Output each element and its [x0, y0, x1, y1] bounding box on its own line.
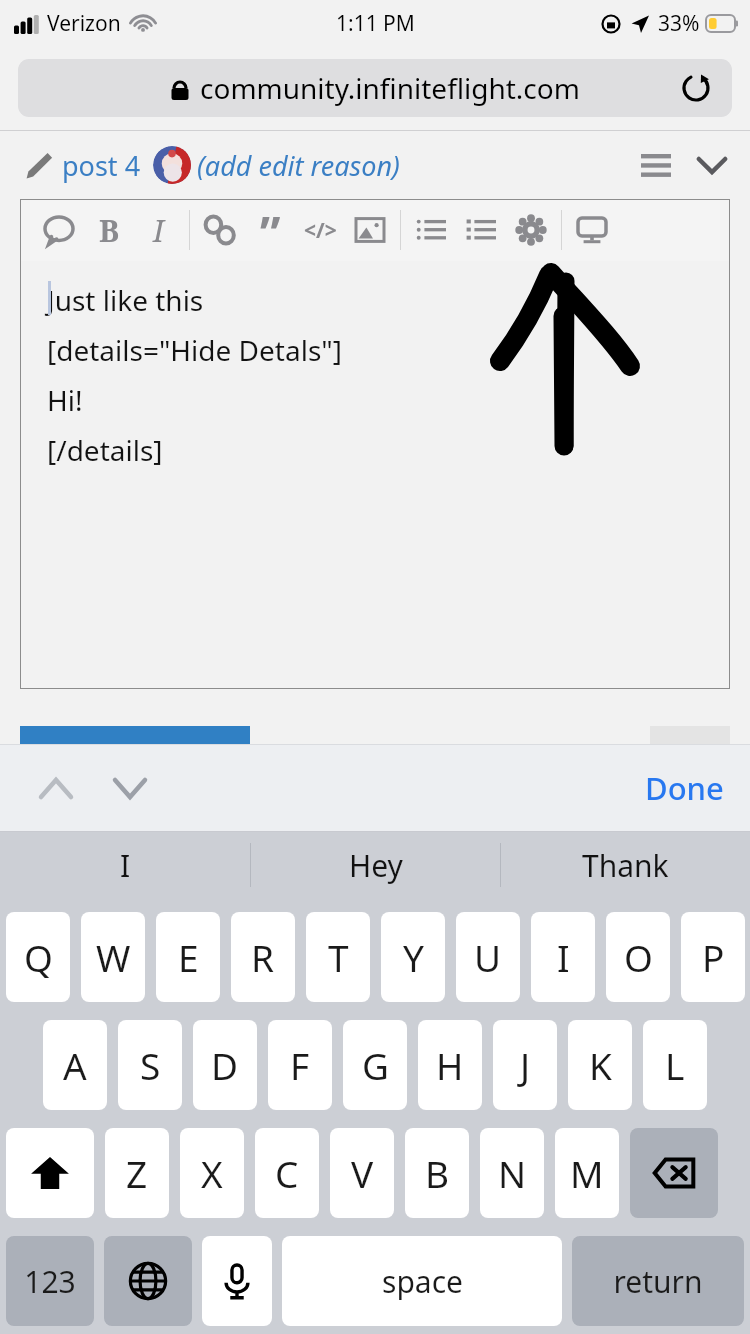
- button[interactable]: [153, 146, 191, 184]
- button[interactable]: Collapse: [688, 141, 736, 189]
- staticText: Hi!: [47, 381, 83, 419]
- staticText: B: [99, 210, 120, 251]
- button[interactable]: (add edit reason): [197, 147, 400, 184]
- staticText: 123: [24, 1261, 76, 1302]
- staticText: Hey: [349, 845, 403, 886]
- button[interactable]: community.infiniteflight.com: [18, 59, 732, 117]
- button[interactable]: Done: [645, 767, 724, 809]
- button[interactable]: Settings: [506, 201, 556, 259]
- staticText: Y: [403, 932, 424, 982]
- button[interactable]: Blockquote: [245, 201, 295, 259]
- staticText: S: [140, 1040, 161, 1090]
- button[interactable]: space: [282, 1236, 562, 1326]
- staticText: Thank: [582, 845, 669, 886]
- staticText: [/details]: [47, 431, 163, 469]
- staticText: P: [702, 932, 725, 982]
- button[interactable]: Q: [6, 912, 70, 1002]
- button[interactable]: B: [405, 1128, 469, 1218]
- staticText: D: [211, 1040, 239, 1090]
- button[interactable]: Shift: [6, 1128, 94, 1218]
- button[interactable]: post 4: [62, 147, 141, 184]
- staticText: space: [382, 1261, 463, 1302]
- button[interactable]: Link: [195, 201, 245, 259]
- button[interactable]: X: [180, 1128, 244, 1218]
- staticText: F: [290, 1040, 310, 1090]
- button[interactable]: V: [330, 1128, 394, 1218]
- button[interactable]: Hey: [251, 832, 500, 898]
- button[interactable]: S: [118, 1020, 182, 1110]
- button[interactable]: I: [531, 912, 595, 1002]
- button[interactable]: Reload: [674, 66, 718, 110]
- button[interactable]: E: [156, 912, 220, 1002]
- button[interactable]: D: [193, 1020, 257, 1110]
- button[interactable]: T: [306, 912, 370, 1002]
- button[interactable]: return: [572, 1236, 744, 1326]
- staticText: </>: [304, 216, 337, 245]
- staticText: T: [328, 932, 349, 982]
- button[interactable]: Next field: [102, 760, 158, 816]
- button[interactable]: Y: [381, 912, 445, 1002]
- staticText: I: [153, 210, 165, 251]
- button[interactable]: 123: [6, 1236, 94, 1326]
- staticText: W: [96, 932, 131, 982]
- button[interactable]: M: [555, 1128, 619, 1218]
- staticText: R: [251, 932, 275, 982]
- staticText: X: [201, 1148, 223, 1198]
- staticText: E: [178, 932, 199, 982]
- button[interactable]: U: [456, 912, 520, 1002]
- button[interactable]: Menu: [632, 141, 680, 189]
- button[interactable]: A: [43, 1020, 107, 1110]
- button[interactable]: Italic: [134, 201, 184, 259]
- staticText: L: [665, 1040, 685, 1090]
- button[interactable]: O: [606, 912, 670, 1002]
- button[interactable]: Quote reply: [34, 201, 84, 259]
- button[interactable]: Bold: [84, 201, 134, 259]
- button[interactable]: Thank: [501, 832, 750, 898]
- button[interactable]: W: [81, 912, 145, 1002]
- button[interactable]: J: [493, 1020, 557, 1110]
- button[interactable]: Code: [295, 201, 345, 259]
- staticText: O: [624, 932, 653, 982]
- staticText: K: [589, 1040, 612, 1090]
- staticText: community.infiniteflight.com: [200, 69, 580, 107]
- button[interactable]: N: [480, 1128, 544, 1218]
- staticText: return: [613, 1261, 703, 1302]
- staticText: Done: [645, 767, 724, 809]
- staticText: I: [120, 845, 131, 886]
- button[interactable]: C: [255, 1128, 319, 1218]
- staticText: B: [425, 1148, 450, 1198]
- staticText: 1:11 PM: [336, 9, 415, 38]
- button[interactable]: G: [343, 1020, 407, 1110]
- button[interactable]: Preview: [567, 201, 617, 259]
- button[interactable]: K: [568, 1020, 632, 1110]
- button[interactable]: Previous field: [28, 760, 84, 816]
- staticText: Z: [126, 1148, 148, 1198]
- button[interactable]: Bulleted list: [406, 201, 456, 259]
- button[interactable]: L: [643, 1020, 707, 1110]
- staticText: H: [436, 1040, 464, 1090]
- staticText: V: [351, 1148, 374, 1198]
- button[interactable]: Switch keyboard: [104, 1236, 192, 1326]
- button[interactable]: Dictation: [202, 1236, 272, 1326]
- button[interactable]: F: [268, 1020, 332, 1110]
- staticText: A: [63, 1040, 87, 1090]
- button[interactable]: Numbered list: [456, 201, 506, 259]
- button[interactable]: Z: [105, 1128, 169, 1218]
- button[interactable]: Edit: [18, 145, 58, 185]
- staticText: I: [557, 932, 570, 982]
- staticText: 33%: [658, 9, 700, 38]
- staticText: J: [520, 1040, 531, 1090]
- staticText: Just like this: [47, 281, 204, 319]
- button[interactable]: P: [681, 912, 745, 1002]
- staticText: M: [570, 1148, 604, 1198]
- staticText: N: [498, 1148, 527, 1198]
- staticText: U: [474, 932, 502, 982]
- button[interactable]: Backspace: [630, 1128, 718, 1218]
- staticText: C: [275, 1148, 299, 1198]
- button[interactable]: R: [231, 912, 295, 1002]
- button[interactable]: I: [0, 832, 250, 898]
- button[interactable]: Image: [345, 201, 395, 259]
- button[interactable]: H: [418, 1020, 482, 1110]
